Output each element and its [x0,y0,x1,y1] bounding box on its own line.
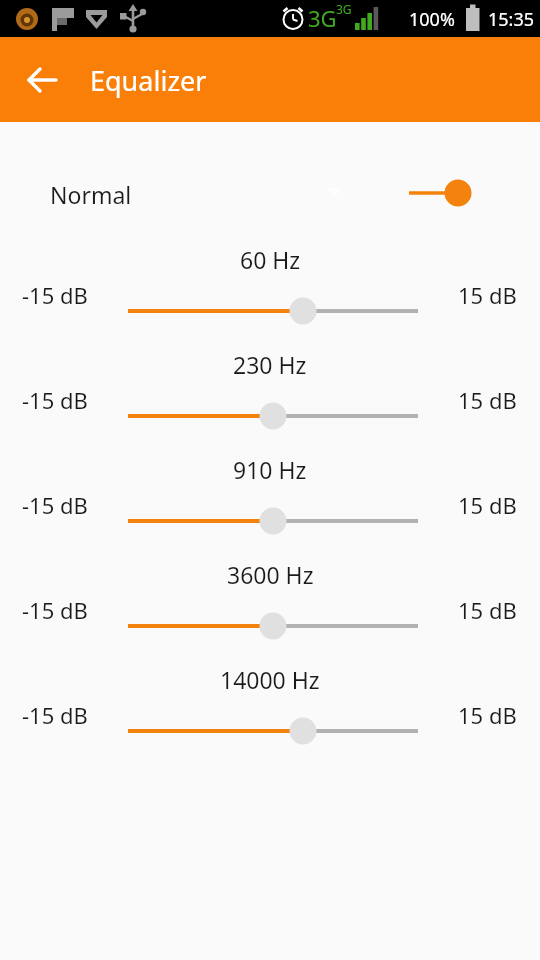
staticText: 230 Hz [233,349,307,380]
staticText: 15 dB [458,490,517,520]
staticText: 3G [308,3,337,33]
staticText: 3600 Hz [227,559,314,590]
button[interactable]: Back [14,52,70,108]
button[interactable]: Enable equalizer [400,170,480,216]
staticText: -15 dB [22,280,88,310]
button[interactable]: 230 Hz [0,343,540,439]
staticText: 15 dB [458,385,517,415]
button[interactable]: 910 Hz [0,448,540,544]
staticText: 100% [409,7,455,32]
staticText: 15:35 [488,7,535,32]
staticText: Normal [50,179,132,210]
button[interactable]: 14000 Hz [0,658,540,754]
staticText: 3G [336,1,352,17]
staticText: 14000 Hz [220,664,320,695]
staticText: -15 dB [22,490,88,520]
staticText: -15 dB [22,595,88,625]
staticText: 910 Hz [233,454,307,485]
staticText: Equalizer [90,62,207,99]
staticText: 15 dB [458,280,517,310]
staticText: -15 dB [22,700,88,730]
button[interactable]: 60 Hz [0,238,540,334]
staticText: 60 Hz [240,244,301,275]
staticText: -15 dB [22,385,88,415]
staticText: 15 dB [458,700,517,730]
button[interactable]: 3600 Hz [0,553,540,649]
staticText: 15 dB [458,595,517,625]
button[interactable]: Normal [40,168,360,220]
